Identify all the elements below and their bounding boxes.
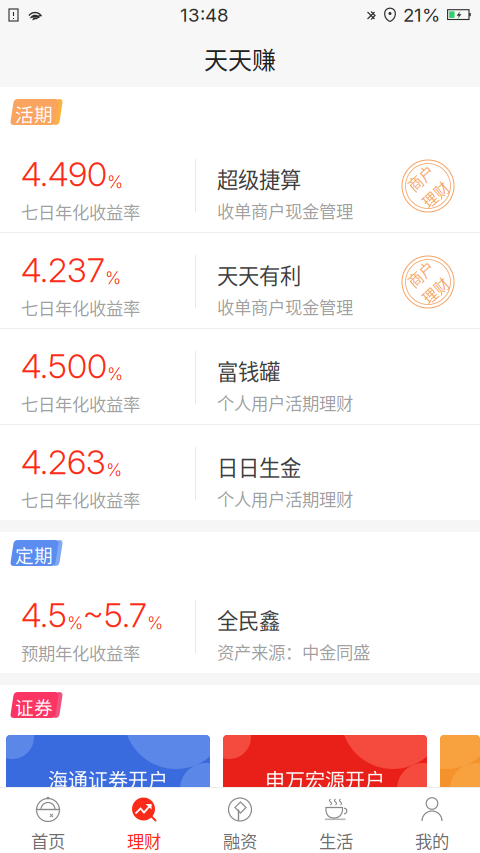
staticText: 个人用户活期理财 bbox=[217, 390, 353, 415]
staticText: 4.237 bbox=[21, 250, 105, 290]
staticText: 资产来源：中金同盛 bbox=[217, 639, 370, 664]
button[interactable]: 融资 bbox=[192, 787, 288, 853]
staticText: 生活 bbox=[319, 828, 353, 853]
staticText: 4.263 bbox=[21, 442, 106, 482]
staticText: % bbox=[107, 171, 123, 192]
staticText: 七日年化收益率 bbox=[21, 391, 140, 416]
staticText: 七日年化收益率 bbox=[21, 295, 140, 320]
staticText: 活期 bbox=[15, 100, 53, 127]
staticText: 证券 bbox=[15, 693, 53, 720]
staticText: 理财 bbox=[413, 186, 443, 208]
button[interactable]: 4.500 bbox=[0, 329, 480, 424]
staticText: % bbox=[107, 363, 123, 384]
button[interactable]: 申万宏源开户 bbox=[223, 735, 427, 787]
staticText: 我的 bbox=[415, 828, 449, 853]
staticText: 21% bbox=[403, 4, 440, 26]
staticText: 天天有利 bbox=[217, 259, 301, 290]
staticText: 超级捷算 bbox=[217, 163, 301, 194]
staticText: 4.5 bbox=[21, 595, 67, 635]
staticText: % bbox=[106, 459, 122, 480]
staticText: 收单商户现金管理 bbox=[217, 294, 353, 319]
staticText: 收单商户现金管理 bbox=[217, 198, 353, 223]
staticText: 理财 bbox=[127, 828, 161, 853]
button[interactable]: 天天赚 bbox=[0, 30, 480, 87]
staticText: ~5.7 bbox=[83, 595, 147, 635]
button[interactable]: 4.5 bbox=[0, 578, 480, 673]
staticText: 申万宏源开户 bbox=[265, 765, 385, 794]
button[interactable]: 我的 bbox=[384, 787, 480, 853]
button[interactable] bbox=[440, 735, 480, 787]
staticText: 预期年化收益率 bbox=[21, 640, 140, 665]
button[interactable]: 4.237 bbox=[0, 233, 480, 328]
staticText: 融资 bbox=[223, 828, 257, 853]
staticText: 海通证券开户 bbox=[48, 765, 168, 794]
staticText: 全民鑫 bbox=[217, 604, 280, 635]
button[interactable]: 4.490 bbox=[0, 137, 480, 232]
button[interactable]: 首页 bbox=[0, 787, 96, 853]
staticText: % bbox=[105, 267, 121, 288]
staticText: 个人用户活期理财 bbox=[217, 486, 353, 511]
staticText: 七日年化收益率 bbox=[21, 199, 140, 224]
staticText: 13:48 bbox=[180, 4, 229, 26]
staticText: 4.490 bbox=[21, 154, 107, 194]
staticText: % bbox=[67, 612, 83, 633]
staticText: 首页 bbox=[31, 828, 65, 853]
staticText: 定期 bbox=[15, 541, 53, 568]
staticText: 商户 bbox=[413, 164, 443, 185]
staticText: % bbox=[147, 612, 163, 633]
button[interactable]: 生活 bbox=[288, 787, 384, 853]
staticText: 天天赚 bbox=[204, 41, 276, 76]
button[interactable]: 理财 bbox=[96, 787, 192, 853]
staticText: 富钱罐 bbox=[217, 355, 280, 386]
staticText: 理财 bbox=[413, 282, 443, 304]
staticText: 4.500 bbox=[21, 346, 107, 386]
staticText: 日日生金 bbox=[217, 451, 301, 482]
button[interactable]: 海通证券开户 bbox=[6, 735, 210, 787]
button[interactable]: 4.263 bbox=[0, 425, 480, 520]
staticText: 七日年化收益率 bbox=[21, 487, 140, 512]
staticText: 商户 bbox=[413, 260, 443, 281]
